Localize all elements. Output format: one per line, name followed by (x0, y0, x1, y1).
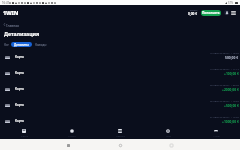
staticText: 12 августа 2024 г. | 11:14 (210, 67, 239, 70)
staticText: 16:41 (2, 1, 10, 5)
button[interactable]: Карта (5, 97, 239, 113)
button[interactable]: Депозиты (11, 42, 32, 47)
button[interactable]: Казино (96, 127, 144, 138)
staticText: Карта (15, 119, 24, 123)
button[interactable]: Карта (5, 65, 239, 81)
button[interactable]: 1WIN home (3, 9, 19, 17)
staticText: 15 августа 2024 г. | 16:30 (210, 51, 239, 54)
staticText: Детализация (4, 30, 40, 37)
staticText: Главная (6, 23, 19, 27)
staticText: Спорт (68, 134, 76, 137)
staticText: 09 августа 2024 г. | 09:48 (210, 83, 239, 86)
staticText: +2000,00 € (222, 87, 239, 91)
button[interactable]: Игры (192, 127, 240, 138)
staticText: 1WIN (3, 9, 19, 17)
button[interactable]: Menu (231, 10, 236, 15)
staticText: Выводы (35, 43, 47, 47)
staticText: Казино (116, 134, 125, 137)
button[interactable]: Касса (0, 127, 48, 138)
staticText: 57% (228, 1, 234, 5)
staticText: Депозиты (14, 43, 29, 47)
button[interactable]: Profile (224, 10, 229, 15)
other: Recents (170, 144, 173, 147)
staticText: Касса (21, 134, 28, 137)
other: Back (67, 144, 70, 147)
staticText: 01 августа 2024 г. | 13:36 (210, 115, 239, 118)
other: Home (119, 144, 122, 147)
staticText: 500,00 € (225, 55, 239, 59)
staticText: Карта (15, 87, 24, 91)
staticText: Игры (213, 134, 220, 137)
button[interactable]: Главная (4, 20, 240, 29)
staticText: Live (166, 134, 171, 137)
staticText: +100,00 € (224, 71, 239, 75)
staticText: 05 августа 2024 г. | 19:02 (210, 99, 239, 102)
staticText: Пополнить (202, 11, 220, 15)
button[interactable]: Live (144, 127, 192, 138)
staticText: Карта (15, 103, 24, 107)
button[interactable]: Спорт (48, 127, 96, 138)
button[interactable]: Карта (5, 113, 239, 129)
staticText: Карта (15, 71, 24, 75)
staticText: +500,00 € (224, 103, 239, 107)
staticText: Все (4, 43, 9, 47)
staticText: +1000,00 € (222, 119, 239, 123)
staticText: 0,00 € (188, 12, 198, 16)
staticText: Карта (15, 55, 24, 59)
button[interactable]: Пополнить (201, 10, 221, 16)
button[interactable]: Карта (5, 81, 239, 97)
button[interactable]: Все (4, 42, 9, 47)
button[interactable]: Выводы (35, 42, 47, 47)
staticText: Баланс (190, 9, 198, 12)
button[interactable]: Карта (5, 49, 239, 65)
